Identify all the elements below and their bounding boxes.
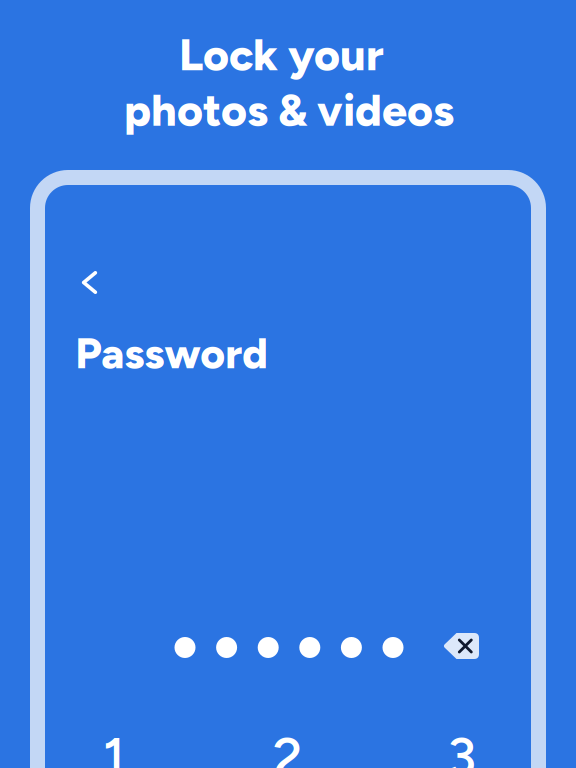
button[interactable]: 2 [218,721,358,768]
button[interactable]: 1 [44,721,184,768]
button[interactable]: Back [67,260,111,304]
button[interactable]: Delete [435,624,487,668]
staticText: 3 [447,725,476,768]
staticText: Password [75,328,268,379]
staticText: 1 [103,725,125,768]
staticText: 2 [273,725,303,768]
staticText: Lock your [179,28,384,81]
button[interactable]: 3 [392,721,532,768]
staticText: photos & videos [124,83,454,137]
